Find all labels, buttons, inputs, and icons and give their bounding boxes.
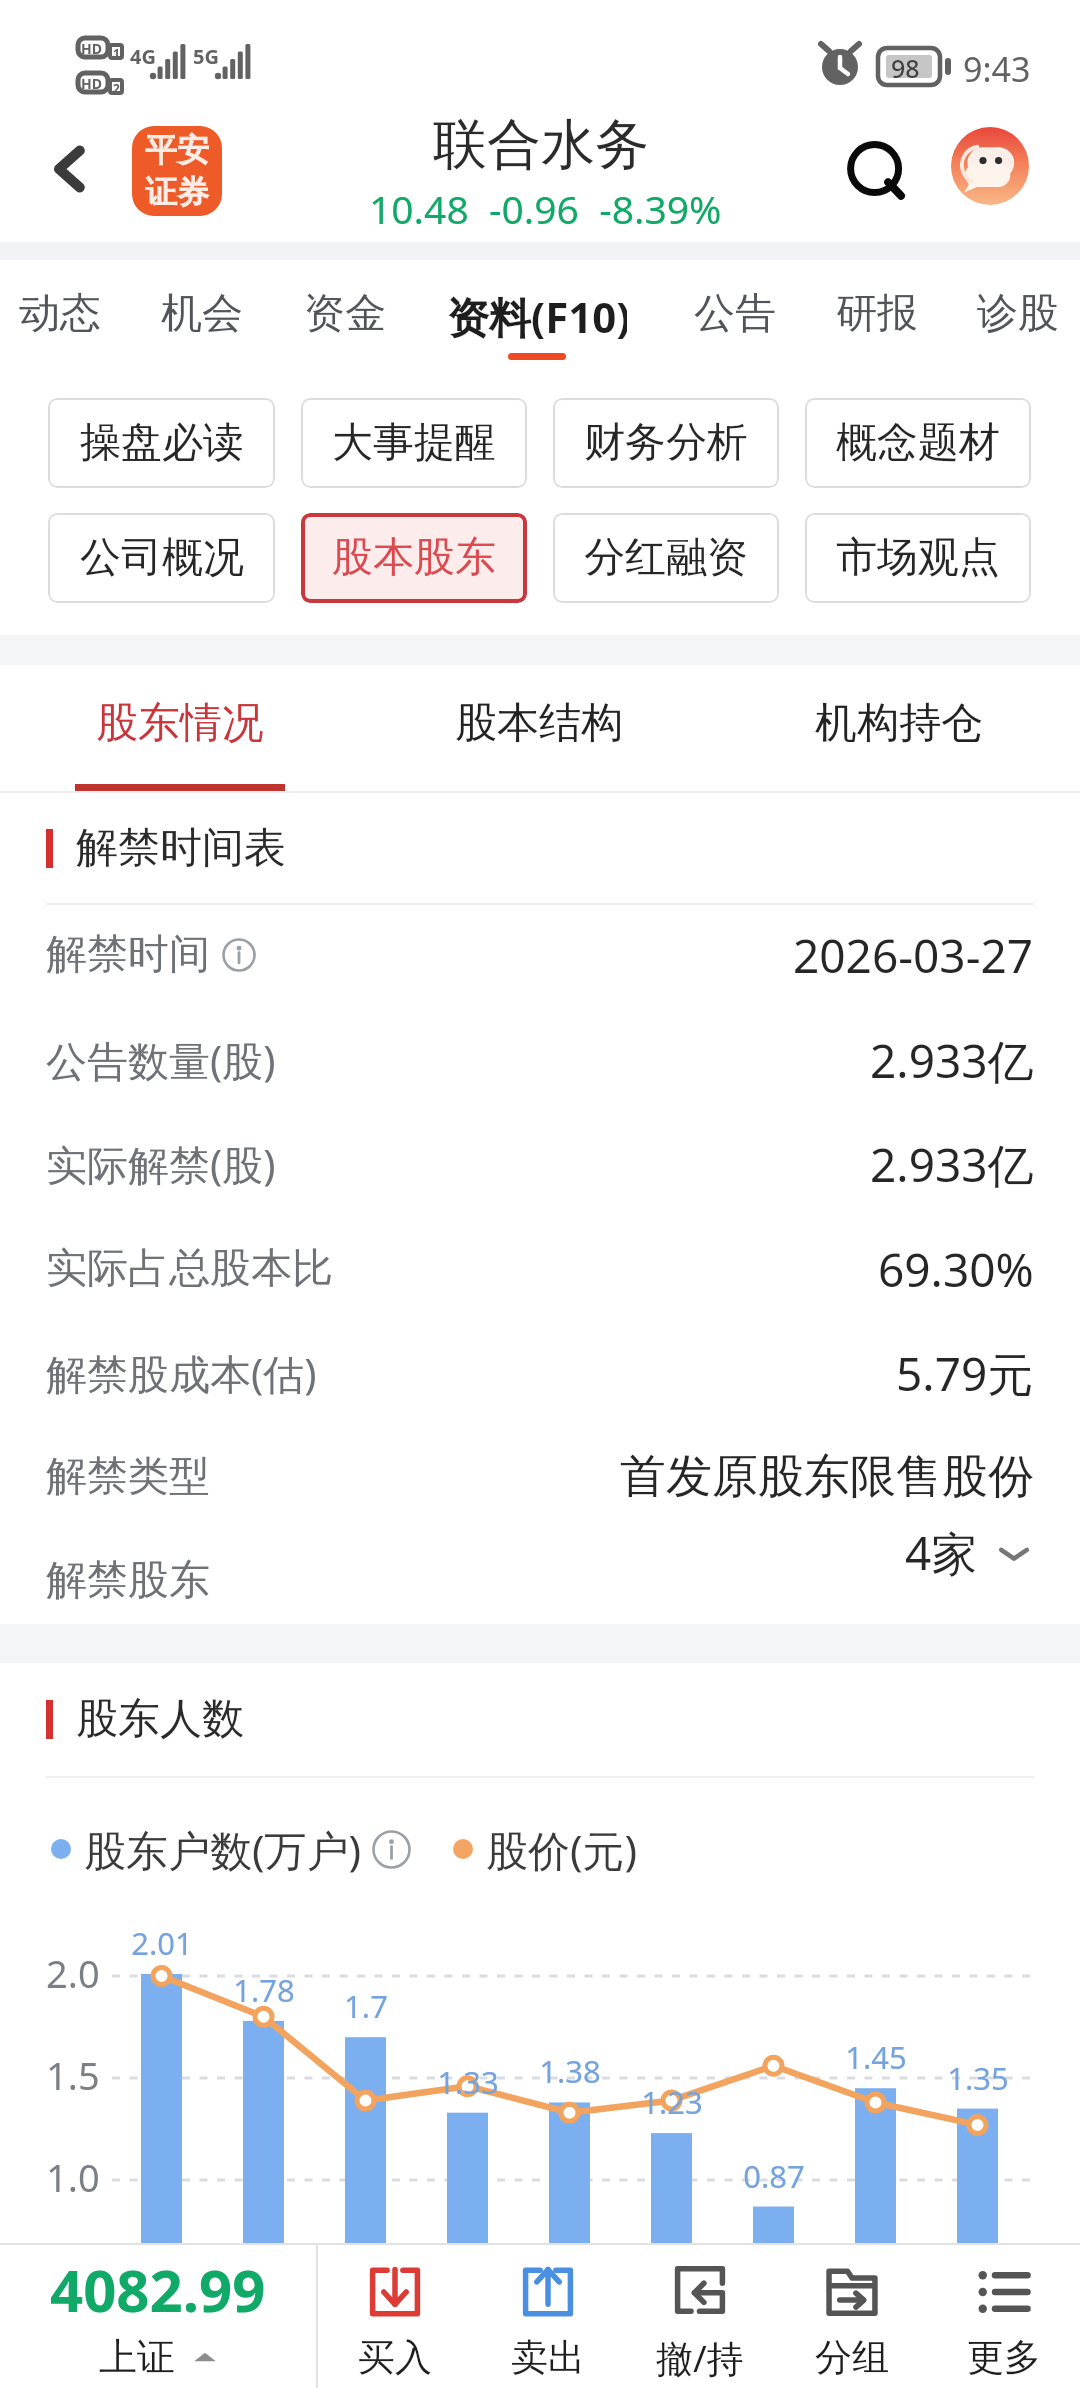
- staticText: 4G: [130, 43, 156, 70]
- button[interactable]: 市场观点: [805, 513, 1031, 603]
- staticText: 10.48 -0.96 -8.39%: [369, 182, 722, 235]
- staticText: 上证: [99, 2333, 175, 2381]
- staticText: 解禁时间: [46, 929, 210, 981]
- staticText: 0.87: [743, 2155, 805, 2197]
- staticText: 平安: [145, 130, 209, 170]
- button[interactable]: 研报: [787, 260, 967, 370]
- staticText: 操盘必读: [80, 417, 244, 469]
- staticText: 机构持仓: [815, 697, 983, 750]
- button[interactable]: Search: [841, 135, 921, 215]
- button[interactable]: Customer service: [951, 127, 1029, 205]
- staticText: 4082.99: [50, 2250, 266, 2329]
- staticText: 买入: [358, 2334, 432, 2381]
- staticText: 大事提醒: [332, 417, 496, 469]
- staticText: 动态: [19, 288, 101, 340]
- staticText: 4家: [905, 1521, 978, 1584]
- staticText: 卖出: [511, 2334, 585, 2381]
- staticText: 2.0: [46, 1947, 100, 1999]
- staticText: 1.33: [437, 2061, 499, 2103]
- staticText: 69.30%: [878, 1238, 1034, 1301]
- staticText: 联合水务: [433, 111, 649, 179]
- staticText: 公告: [694, 288, 776, 340]
- button[interactable]: 操盘必读: [48, 398, 275, 488]
- staticText: 股东情况: [96, 697, 264, 750]
- button[interactable]: 分组: [776, 2257, 928, 2388]
- staticText: 1: [113, 45, 120, 61]
- button[interactable]: 公告: [645, 260, 825, 370]
- staticText: 解禁股东: [46, 1555, 210, 1607]
- button[interactable]: 财务分析: [553, 398, 779, 488]
- button[interactable]: 分红融资: [553, 513, 779, 603]
- button[interactable]: 更多: [928, 2257, 1080, 2388]
- button[interactable]: 机会: [112, 260, 292, 370]
- staticText: 更多: [967, 2334, 1041, 2381]
- button[interactable]: 股东情况: [30, 665, 330, 793]
- staticText: 1.38: [539, 2050, 601, 2092]
- staticText: 撤/持: [656, 2332, 744, 2383]
- staticText: 股东人数: [76, 1693, 244, 1741]
- staticText: 股本股东: [332, 532, 496, 584]
- staticText: 1.0: [46, 2151, 100, 2203]
- staticText: 机会: [161, 288, 243, 340]
- button[interactable]: 卖出: [471, 2257, 624, 2388]
- staticText: 2026-03-27: [793, 924, 1034, 987]
- button[interactable]: 诊股: [928, 260, 1080, 370]
- staticText: 解禁时间表: [76, 822, 286, 870]
- staticText: 1.78: [233, 1969, 295, 2011]
- staticText: 解禁类型: [46, 1451, 210, 1503]
- staticText: 2: [113, 80, 120, 96]
- staticText: HD: [81, 39, 102, 58]
- staticText: 2.933亿: [870, 1029, 1034, 1092]
- button[interactable]: 买入: [318, 2257, 471, 2388]
- staticText: HD: [81, 74, 102, 93]
- staticText: 资金: [304, 288, 386, 340]
- staticText: 1.45: [845, 2036, 907, 2078]
- staticText: 首发原股东限售股份: [620, 1448, 1034, 1506]
- staticText: 股本结构: [455, 697, 623, 750]
- staticText: 公告数量(股): [46, 1032, 276, 1088]
- button[interactable]: 公司概况: [48, 513, 275, 603]
- button[interactable]: 撤/持: [624, 2257, 776, 2388]
- staticText: 分组: [815, 2334, 889, 2381]
- staticText: 98: [891, 51, 920, 85]
- staticText: 财务分析: [584, 417, 748, 469]
- button[interactable]: 股本股东: [301, 513, 527, 603]
- staticText: 1.5: [46, 2049, 100, 2101]
- button[interactable]: 机构持仓: [749, 665, 1049, 793]
- staticText: 9:43: [963, 46, 1031, 92]
- staticText: 概念题材: [836, 417, 1000, 469]
- staticText: 研报: [836, 288, 918, 340]
- staticText: 诊股: [977, 288, 1059, 340]
- staticText: 5G: [193, 43, 219, 70]
- staticText: 2.933亿: [870, 1133, 1034, 1196]
- staticText: 公司概况: [80, 532, 244, 584]
- staticText: 股价(元): [486, 1821, 638, 1878]
- staticText: 解禁股成本(估): [46, 1345, 317, 1401]
- staticText: 资料(F10): [447, 288, 627, 345]
- staticText: 2.01: [131, 1922, 193, 1964]
- staticText: 分红融资: [584, 532, 748, 584]
- staticText: 5.79元: [896, 1342, 1034, 1405]
- button[interactable]: 动态: [0, 260, 150, 370]
- staticText: 实际占总股本比: [46, 1243, 333, 1295]
- staticText: 1.7: [344, 1985, 388, 2027]
- staticText: 证券: [145, 172, 209, 212]
- button[interactable]: 大事提醒: [301, 398, 527, 488]
- staticText: 1.35: [947, 2057, 1009, 2099]
- button[interactable]: Ping An Securities: [132, 126, 222, 216]
- button[interactable]: 资料(F10): [447, 260, 627, 370]
- button[interactable]: 资金: [255, 260, 435, 370]
- button[interactable]: 4082.99: [0, 2243, 316, 2388]
- staticText: 股东户数(万户): [84, 1821, 362, 1878]
- staticText: 市场观点: [836, 532, 1000, 584]
- button[interactable]: 概念题材: [805, 398, 1031, 488]
- staticText: 实际解禁(股): [46, 1136, 276, 1192]
- staticText: 1.23: [641, 2081, 703, 2123]
- button[interactable]: 股本结构: [389, 665, 689, 793]
- button[interactable]: Back: [31, 129, 111, 209]
